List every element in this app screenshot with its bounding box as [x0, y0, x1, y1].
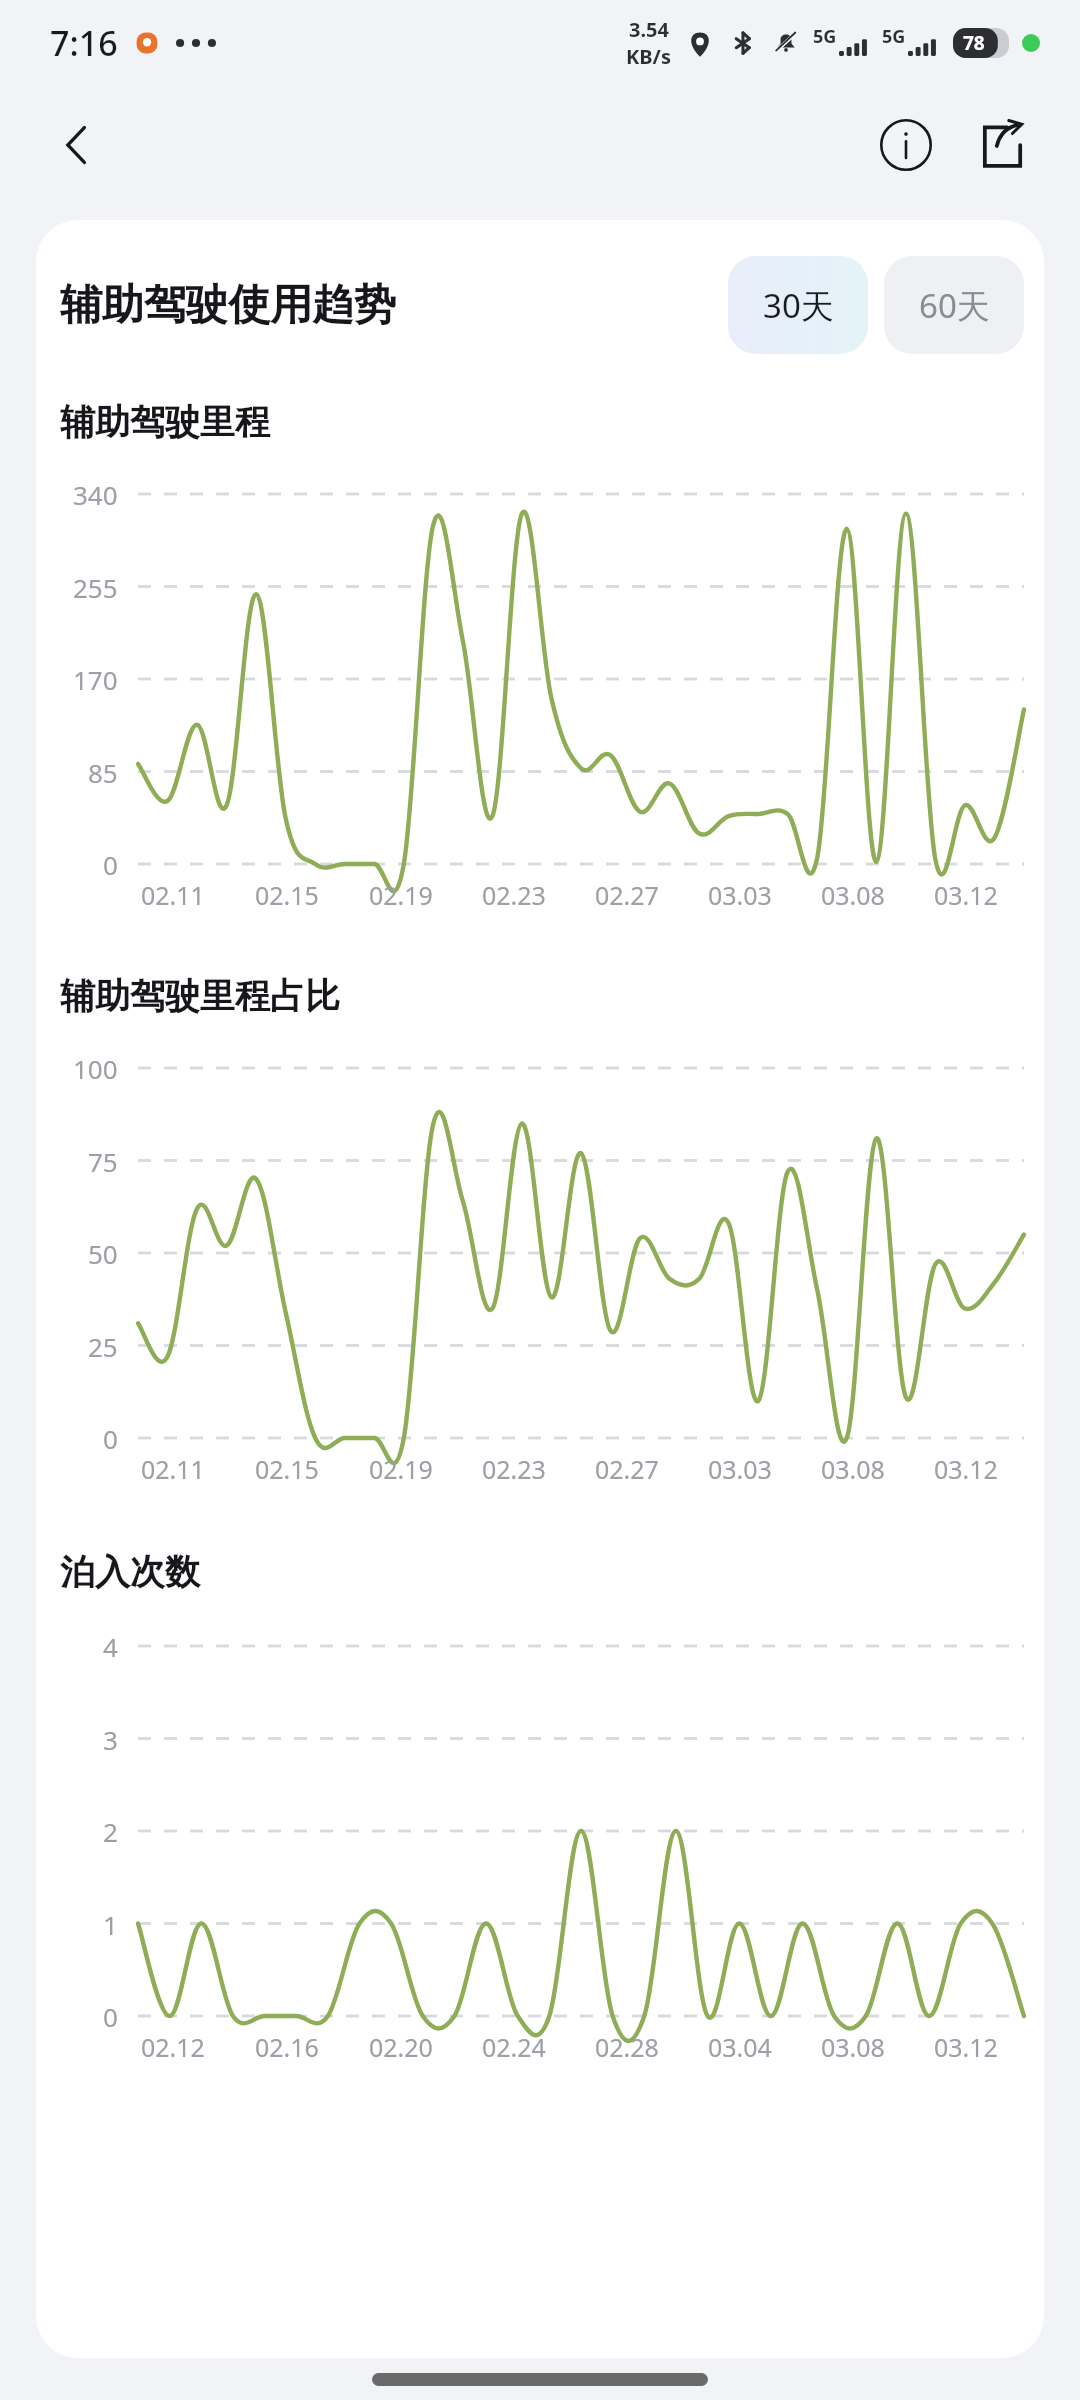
staticText: 02.27: [595, 878, 659, 912]
staticText: 0: [103, 847, 118, 882]
staticText: 3.54: [629, 16, 669, 43]
staticText: 4: [103, 1629, 118, 1664]
staticText: 60天: [919, 283, 990, 328]
staticText: 78: [963, 30, 985, 56]
staticText: 03.03: [708, 878, 772, 912]
staticText: 03.08: [821, 878, 885, 912]
staticText: 02.19: [369, 1452, 433, 1486]
staticText: 02.16: [255, 2030, 319, 2064]
button[interactable]: 60天: [884, 256, 1024, 354]
staticText: 02.11: [141, 1452, 205, 1486]
staticText: 02.23: [482, 878, 546, 912]
staticText: 03.08: [821, 1452, 885, 1486]
staticText: 85: [88, 755, 118, 790]
staticText: 02.15: [255, 878, 319, 912]
staticText: 02.15: [255, 1452, 319, 1486]
staticText: 7:16: [50, 20, 118, 66]
staticText: 0: [103, 1999, 118, 2034]
button[interactable]: Back: [38, 106, 116, 184]
staticText: 辅助驾驶使用趋势: [60, 279, 396, 332]
staticText: 02.11: [141, 878, 205, 912]
staticText: 03.12: [934, 878, 998, 912]
staticText: 泊入次数: [60, 1550, 200, 1594]
staticText: 03.12: [934, 1452, 998, 1486]
staticText: 5G: [813, 24, 837, 49]
staticText: 03.04: [708, 2030, 772, 2064]
staticText: 02.23: [482, 1452, 546, 1486]
staticText: 75: [88, 1144, 118, 1179]
staticText: 02.24: [482, 2030, 546, 2064]
button[interactable]: Share: [960, 103, 1044, 187]
staticText: 1: [103, 1907, 118, 1942]
staticText: 0: [103, 1421, 118, 1456]
button[interactable]: 30天: [728, 256, 868, 354]
staticText: 02.12: [141, 2030, 205, 2064]
staticText: 03.12: [934, 2030, 998, 2064]
staticText: 02.20: [369, 2030, 433, 2064]
staticText: 02.28: [595, 2030, 659, 2064]
staticText: 03.08: [821, 2030, 885, 2064]
staticText: 170: [73, 662, 118, 697]
staticText: 02.27: [595, 1452, 659, 1486]
staticText: 25: [88, 1329, 118, 1364]
staticText: 02.19: [369, 878, 433, 912]
staticText: 3: [103, 1722, 118, 1757]
staticText: 03.03: [708, 1452, 772, 1486]
staticText: 340: [73, 477, 118, 512]
staticText: 辅助驾驶里程: [60, 400, 270, 444]
staticText: 辅助驾驶里程占比: [60, 974, 340, 1018]
button[interactable]: Info: [864, 103, 948, 187]
staticText: 50: [88, 1236, 118, 1271]
staticText: 5G: [882, 24, 906, 49]
staticText: 255: [73, 570, 118, 605]
staticText: 2: [103, 1814, 118, 1849]
staticText: 30天: [763, 283, 834, 328]
staticText: 100: [73, 1051, 118, 1086]
staticText: KB/s: [626, 43, 671, 70]
